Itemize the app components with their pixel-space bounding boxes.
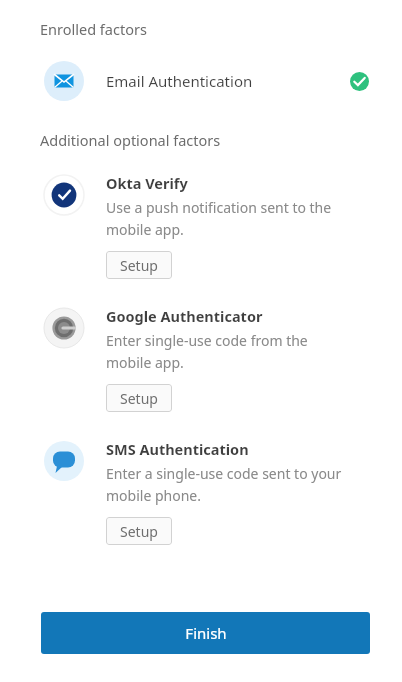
button[interactable]: Setup: [106, 251, 172, 279]
staticText: Finish: [185, 623, 227, 643]
staticText: Email Authentication: [106, 71, 253, 91]
staticText: Okta Verify: [106, 173, 188, 193]
staticText: Setup: [120, 389, 158, 408]
staticText: mobile app.: [106, 353, 184, 372]
staticText: Additional optional factors: [40, 130, 221, 150]
button[interactable]: Email Authentication: [0, 58, 402, 104]
staticText: Setup: [120, 522, 158, 541]
other: Okta Verify: [44, 175, 84, 215]
staticText: SMS Authentication: [106, 439, 249, 459]
other: Google Authenticator: [44, 308, 84, 348]
button[interactable]: Setup: [106, 517, 172, 545]
other: SMS Authentication: [44, 441, 84, 481]
staticText: mobile phone.: [106, 486, 201, 505]
button[interactable]: Finish: [41, 612, 370, 654]
button[interactable]: Setup: [106, 384, 172, 412]
staticText: mobile app.: [106, 220, 184, 239]
staticText: Enter single-use code from the: [106, 331, 308, 350]
staticText: Enrolled factors: [40, 19, 147, 39]
staticText: Setup: [120, 256, 158, 275]
staticText: Use a push notification sent to the: [106, 198, 332, 217]
staticText: Enter a single-use code sent to your: [106, 464, 342, 483]
staticText: Google Authenticator: [106, 306, 263, 326]
